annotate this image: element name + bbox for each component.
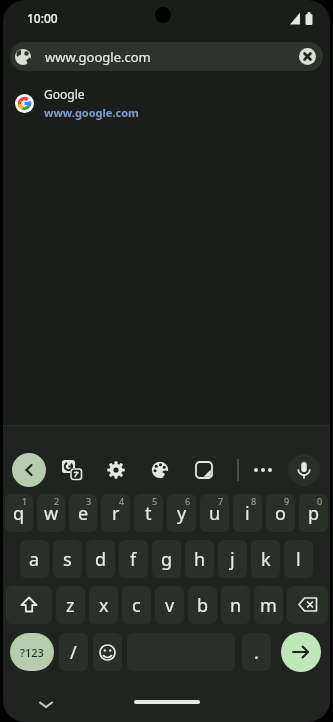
staticText: / — [70, 640, 77, 665]
button[interactable]: d — [86, 540, 115, 578]
staticText: u — [209, 501, 221, 526]
button[interactable]: . — [242, 633, 271, 671]
button[interactable]: Google — [3, 83, 330, 123]
button[interactable]: y — [167, 494, 196, 532]
staticText: p — [308, 501, 320, 526]
staticText: n — [230, 593, 242, 618]
staticText: e — [78, 501, 89, 526]
button[interactable]: r — [101, 494, 130, 532]
staticText: x — [99, 593, 109, 618]
button[interactable]: o — [266, 494, 295, 532]
button[interactable]: w — [37, 494, 65, 532]
button[interactable]: j — [218, 540, 247, 578]
button[interactable] — [248, 455, 278, 485]
button[interactable]: l — [284, 540, 313, 578]
staticText: y — [177, 501, 187, 526]
button[interactable]: s — [53, 540, 82, 578]
button[interactable]: n — [221, 586, 250, 624]
staticText: 7 — [218, 495, 224, 507]
staticText: a — [29, 547, 40, 572]
staticText: 9 — [284, 495, 290, 507]
staticText: Google — [44, 86, 85, 102]
staticText: z — [66, 593, 75, 618]
button[interactable] — [288, 454, 320, 486]
button[interactable]: v — [155, 586, 184, 624]
button[interactable]: www.google.com — [10, 42, 323, 71]
button[interactable]: x — [89, 586, 118, 624]
staticText: h — [194, 547, 206, 572]
staticText: w — [44, 501, 59, 526]
staticText: i — [245, 501, 250, 526]
staticText: v — [165, 593, 175, 618]
staticText: 1 — [22, 495, 28, 507]
staticText: m — [260, 593, 277, 618]
staticText: ?123 — [20, 645, 44, 660]
button[interactable]: z — [56, 586, 85, 624]
button[interactable]: g — [152, 540, 181, 578]
button[interactable] — [287, 586, 328, 624]
staticText: k — [261, 547, 271, 572]
button[interactable]: f — [119, 540, 148, 578]
staticText: 2 — [54, 495, 60, 507]
button[interactable]: ?123 — [10, 633, 54, 671]
staticText: l — [296, 547, 301, 572]
staticText: www.google.com — [44, 105, 139, 120]
staticText: f — [130, 547, 137, 572]
button[interactable]: u — [200, 494, 229, 532]
button[interactable] — [189, 455, 219, 485]
button[interactable]: t — [134, 494, 163, 532]
button[interactable]: a — [20, 540, 49, 578]
button[interactable]: m — [254, 586, 283, 624]
staticText: 3 — [86, 495, 92, 507]
button[interactable]: i — [233, 494, 262, 532]
button[interactable]: e — [69, 494, 97, 532]
button[interactable] — [281, 632, 321, 672]
staticText: . — [254, 640, 259, 665]
staticText: g — [161, 547, 173, 572]
staticText: t — [145, 501, 152, 526]
button[interactable] — [57, 455, 87, 485]
button[interactable] — [101, 455, 131, 485]
staticText: 0 — [317, 495, 323, 507]
staticText: d — [95, 547, 107, 572]
button[interactable]: p — [299, 494, 328, 532]
staticText: j — [230, 547, 235, 572]
button[interactable] — [6, 586, 52, 624]
button[interactable]: k — [251, 540, 280, 578]
staticText: 8 — [251, 495, 257, 507]
button[interactable]: q — [5, 494, 33, 532]
button[interactable] — [145, 455, 175, 485]
staticText: 6 — [185, 495, 191, 507]
staticText: www.google.com — [45, 48, 151, 66]
staticText: 10:00 — [27, 10, 58, 26]
staticText: c — [132, 593, 141, 618]
button[interactable] — [93, 633, 122, 671]
staticText: s — [63, 547, 72, 572]
button[interactable]: b — [188, 586, 217, 624]
staticText: 4 — [119, 495, 125, 507]
button[interactable]: c — [122, 586, 151, 624]
button[interactable]: / — [59, 633, 88, 671]
button[interactable] — [299, 48, 316, 65]
staticText: o — [275, 501, 286, 526]
staticText: q — [13, 501, 25, 526]
staticText: b — [197, 593, 209, 618]
button[interactable]: h — [185, 540, 214, 578]
button[interactable] — [12, 453, 46, 487]
staticText: r — [112, 501, 120, 526]
staticText: 5 — [152, 495, 158, 507]
